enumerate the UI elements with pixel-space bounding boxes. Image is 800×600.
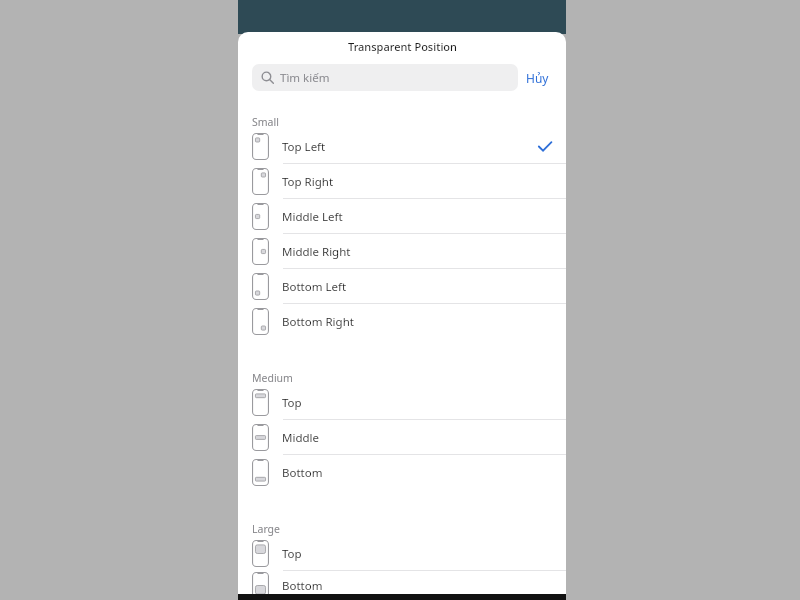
staticText: Medium — [252, 371, 293, 385]
staticText: Middle — [282, 430, 319, 446]
button[interactable]: Middle Left — [238, 199, 566, 234]
staticText: Bottom — [282, 465, 323, 481]
button[interactable]: Hủy — [518, 66, 557, 90]
button[interactable]: Middle Right — [238, 234, 566, 269]
staticText: Large — [252, 522, 281, 536]
button[interactable]: Middle — [238, 420, 566, 455]
button[interactable]: Bottom — [238, 455, 566, 490]
staticText: Bottom Right — [282, 314, 354, 330]
staticText: Bottom Left — [282, 279, 347, 295]
button[interactable]: Bottom — [238, 571, 566, 600]
staticText: Top Left — [282, 139, 326, 155]
button[interactable]: Top — [238, 385, 566, 420]
staticText: Top — [282, 546, 302, 562]
staticText: Middle Right — [282, 244, 351, 260]
button[interactable]: Top — [238, 536, 566, 571]
staticText: Middle Left — [282, 209, 343, 225]
button[interactable]: Top Right — [238, 164, 566, 199]
staticText: Hủy — [526, 70, 549, 86]
button[interactable]: Top Left — [238, 129, 566, 164]
staticText: Tìm kiếm — [280, 70, 330, 86]
staticText: Bottom — [282, 578, 323, 594]
button[interactable]: Bottom Right — [238, 304, 566, 339]
staticText: Transparent Position — [348, 39, 457, 54]
staticText: Top Right — [282, 174, 334, 190]
staticText: Top — [282, 395, 302, 411]
button[interactable]: Bottom Left — [238, 269, 566, 304]
staticText: Small — [252, 115, 279, 129]
button[interactable]: Tìm kiếm — [252, 64, 518, 91]
